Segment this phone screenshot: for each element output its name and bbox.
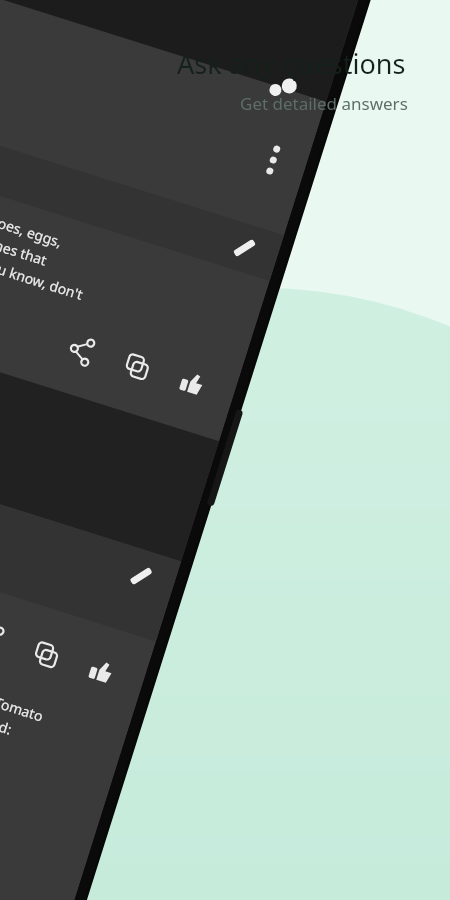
button[interactable]: Ask any questions onboarding page	[0, 0, 450, 900]
